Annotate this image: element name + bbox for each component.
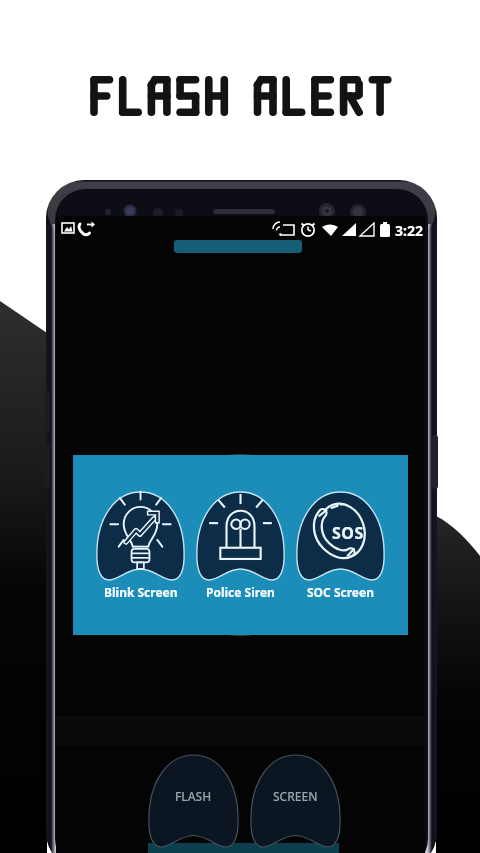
staticText: SOS xyxy=(332,522,364,544)
button[interactable]: Police Siren xyxy=(196,492,285,600)
button[interactable]: SOS xyxy=(296,492,385,600)
staticText: FLASH xyxy=(175,788,212,804)
staticText: 3:22 xyxy=(395,221,423,240)
staticText: SOC Screen xyxy=(307,584,374,600)
button[interactable]: FLASH xyxy=(148,755,239,847)
staticText: SCREEN xyxy=(273,788,318,804)
staticText: Police Siren xyxy=(206,584,275,600)
button[interactable]: Blink Screen xyxy=(96,492,185,600)
button[interactable]: SCREEN xyxy=(250,755,341,847)
staticText: Blink Screen xyxy=(104,584,178,600)
